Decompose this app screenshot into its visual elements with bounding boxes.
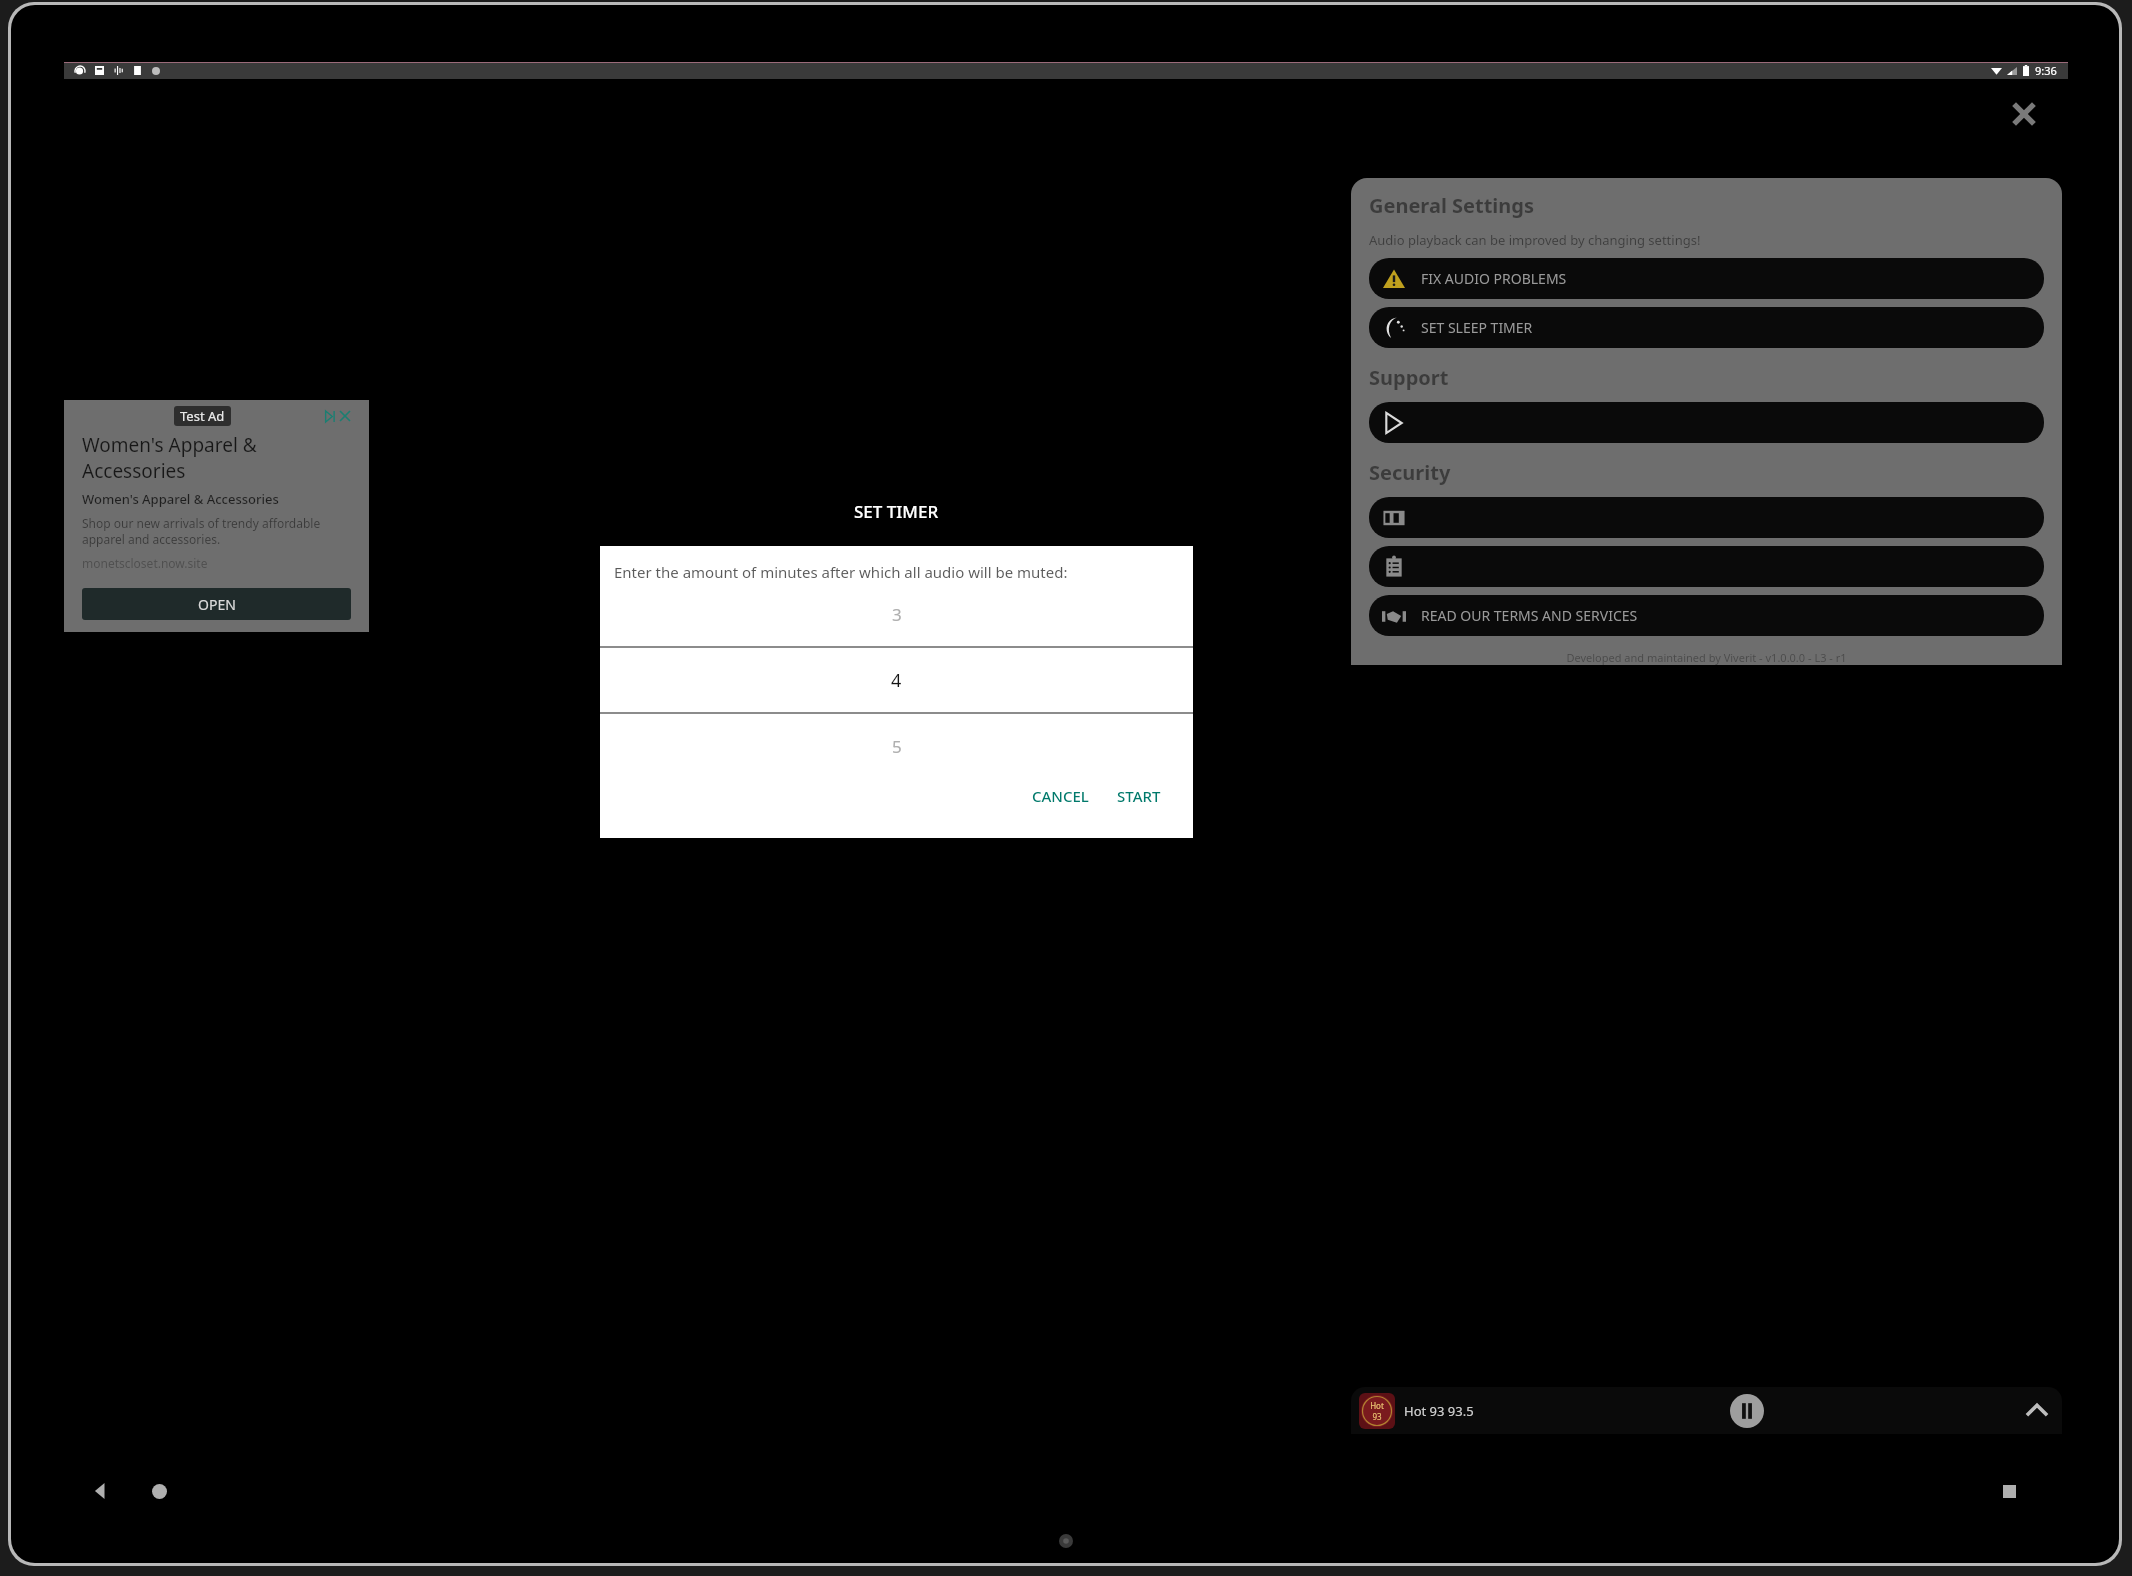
- staticText: CANCEL: [1032, 786, 1089, 806]
- button[interactable]: Hot 93: [1351, 1387, 2062, 1434]
- button[interactable]: 4: [600, 648, 1193, 712]
- button[interactable]: SET SLEEP TIMER: [1369, 307, 2044, 348]
- staticText: START: [1117, 786, 1161, 806]
- staticText: Hot 93: [1370, 1400, 1384, 1422]
- button[interactable]: Expand player: [2020, 1394, 2054, 1428]
- staticText: Enter the amount of minutes after which …: [614, 562, 1068, 582]
- staticText: 4: [891, 668, 902, 693]
- button[interactable]: READ OUR TERMS AND SERVICES: [1369, 595, 2044, 636]
- staticText: READ OUR TERMS AND SERVICES: [1421, 606, 1638, 625]
- button[interactable]: OPEN: [82, 588, 351, 620]
- button[interactable]: [1369, 497, 2044, 538]
- button[interactable]: Home: [144, 1476, 174, 1506]
- button[interactable]: Close ad: [339, 410, 351, 422]
- staticText: Security: [1369, 459, 1451, 486]
- staticText: 3: [892, 603, 902, 626]
- button[interactable]: Pause: [1728, 1392, 1766, 1430]
- button[interactable]: START: [1107, 778, 1171, 814]
- staticText: Women's Apparel & Accessories: [82, 490, 279, 508]
- button[interactable]: [1369, 546, 2044, 587]
- button[interactable]: FIX AUDIO PROBLEMS: [1369, 258, 2044, 299]
- staticText: Developed and maintained by Viverit - v1…: [1369, 650, 2044, 665]
- staticText: 9:36: [2035, 63, 2057, 78]
- staticText: Shop our new arrivals of trendy affordab…: [82, 515, 321, 547]
- staticText: General Settings: [1369, 192, 1535, 219]
- staticText: OPEN: [198, 595, 236, 614]
- button[interactable]: [1369, 402, 2044, 443]
- staticText: Hot 93 93.5: [1404, 1402, 1474, 1420]
- staticText: SET TIMER: [854, 500, 939, 523]
- staticText: Audio playback can be improved by changi…: [1369, 231, 1701, 249]
- button[interactable]: Close: [2006, 96, 2042, 132]
- staticText: monetscloset.now.site: [82, 555, 208, 571]
- staticText: 5: [892, 735, 902, 758]
- staticText: SET SLEEP TIMER: [1421, 318, 1533, 337]
- staticText: Women's Apparel & Accessories: [82, 432, 257, 484]
- button[interactable]: Back: [86, 1476, 116, 1506]
- staticText: FIX AUDIO PROBLEMS: [1421, 269, 1567, 288]
- button[interactable]: CANCEL: [1022, 778, 1099, 814]
- staticText: Support: [1369, 364, 1449, 391]
- button[interactable]: Recent apps: [1994, 1476, 2024, 1506]
- staticText: Test Ad: [180, 407, 225, 425]
